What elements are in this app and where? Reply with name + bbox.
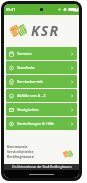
button[interactable]: Servicebereich bbox=[6, 75, 77, 88]
staticText: Neuigkeiten bbox=[17, 107, 39, 112]
staticText: 09:41 bbox=[6, 7, 16, 12]
button[interactable]: Abfälle von A - Z bbox=[6, 89, 77, 102]
staticText: Kommunale bbox=[7, 144, 28, 149]
staticText: Einstellungen & Hilfe bbox=[17, 121, 55, 126]
other: Home bbox=[29, 174, 54, 175]
staticText: Termine bbox=[17, 51, 32, 56]
staticText: Ein Unternehmen der Stadt Recklinghausen bbox=[12, 165, 72, 169]
button[interactable]: Einstellungen & Hilfe bbox=[6, 117, 77, 130]
button[interactable]: Standorte bbox=[6, 61, 77, 74]
staticText: Servicebereich bbox=[17, 79, 43, 84]
staticText: Standorte bbox=[17, 65, 35, 70]
button[interactable]: Neuigkeiten bbox=[6, 103, 77, 116]
staticText: Abfälle von A - Z bbox=[17, 93, 46, 98]
button[interactable]: Ein Unternehmen der Stadt Recklinghausen bbox=[4, 164, 79, 170]
staticText: Servicebetriebe bbox=[7, 149, 34, 154]
staticText: KSR bbox=[31, 21, 60, 40]
button[interactable]: Termine bbox=[6, 47, 77, 60]
staticText: Recklinghausen bbox=[7, 154, 34, 159]
